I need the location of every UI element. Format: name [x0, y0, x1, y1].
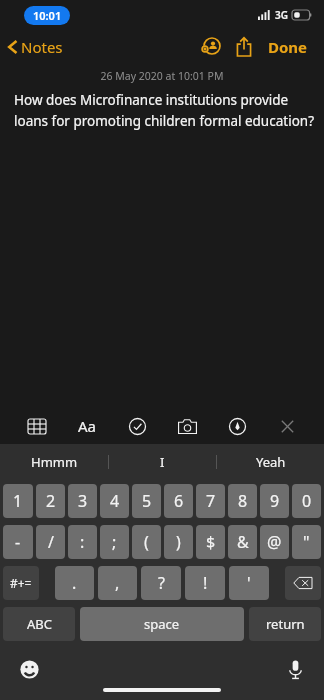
staticText: / — [48, 531, 54, 553]
button[interactable]: Close keyboard — [268, 409, 306, 443]
button[interactable]: Checklist — [118, 409, 156, 443]
staticText: ) — [176, 531, 181, 553]
button[interactable]: 2 — [36, 484, 65, 518]
button[interactable]: 9 — [260, 484, 289, 518]
staticText: , — [115, 572, 120, 594]
staticText: 8 — [238, 490, 248, 512]
button[interactable]: Share — [228, 32, 260, 62]
button[interactable]: ; — [100, 525, 129, 559]
staticText: ( — [144, 531, 149, 553]
staticText: . — [72, 572, 77, 594]
button[interactable]: : — [68, 525, 97, 559]
button[interactable]: return — [249, 607, 321, 641]
staticText: 9 — [270, 490, 280, 512]
staticText: & — [237, 531, 249, 553]
staticText: Notes — [21, 37, 63, 57]
button[interactable]: . — [55, 566, 94, 600]
button[interactable]: 4 — [100, 484, 129, 518]
button[interactable]: , — [98, 566, 137, 600]
button[interactable]: Yeah — [217, 444, 324, 480]
staticText: 6 — [174, 490, 184, 512]
button[interactable]: Text format — [68, 409, 106, 443]
staticText: ; — [112, 531, 117, 553]
staticText: ' — [247, 572, 251, 594]
staticText: 10:01 — [33, 8, 62, 23]
staticText: Aa — [78, 416, 97, 436]
staticText: 1 — [13, 490, 23, 512]
staticText: 4 — [110, 490, 120, 512]
button[interactable]: Notes — [0, 33, 71, 61]
staticText: Hmmm — [31, 453, 78, 471]
button[interactable]: ) — [164, 525, 193, 559]
button[interactable]: Table — [18, 409, 56, 443]
button[interactable]: ! — [185, 566, 225, 600]
button[interactable]: - — [3, 525, 33, 559]
button[interactable]: / — [36, 525, 65, 559]
button[interactable]: ABC — [3, 607, 75, 641]
button[interactable]: & — [228, 525, 257, 559]
button[interactable]: 0 — [292, 484, 321, 518]
button[interactable]: Camera — [168, 409, 206, 443]
button[interactable]: space — [80, 607, 244, 641]
staticText: 7 — [206, 490, 216, 512]
button[interactable]: Markup — [218, 409, 256, 443]
button[interactable]: 8 — [228, 484, 257, 518]
staticText: I — [160, 453, 165, 471]
staticText: Done — [268, 37, 308, 57]
staticText: ! — [203, 572, 208, 594]
staticText: ABC — [27, 615, 52, 633]
staticText: 3 — [78, 490, 88, 512]
staticText: Yeah — [256, 453, 286, 471]
staticText: 0 — [302, 490, 312, 512]
staticText: return — [266, 615, 305, 633]
button[interactable]: ( — [132, 525, 161, 559]
button[interactable]: 6 — [164, 484, 193, 518]
staticText: $ — [206, 531, 216, 553]
staticText: : — [80, 531, 85, 553]
staticText: @ — [267, 531, 282, 553]
staticText: 26 May 2020 at 10:01 PM — [0, 69, 324, 83]
staticText: ? — [158, 572, 165, 594]
staticText: " — [303, 531, 310, 553]
staticText: #+= — [10, 575, 32, 591]
staticText: space — [144, 615, 180, 633]
button[interactable]: 1 — [3, 484, 33, 518]
button[interactable]: I — [109, 444, 216, 480]
button[interactable]: 7 — [196, 484, 225, 518]
staticText: - — [15, 531, 21, 553]
button[interactable]: ' — [229, 566, 269, 600]
button[interactable]: 3 — [68, 484, 97, 518]
button[interactable]: Dictation — [280, 654, 310, 684]
button[interactable]: Hmmm — [0, 444, 108, 480]
staticText: 2 — [46, 490, 56, 512]
button[interactable]: @ — [260, 525, 289, 559]
staticText: How does Microfinance institutions provi… — [14, 91, 314, 130]
button[interactable]: " — [292, 525, 321, 559]
button[interactable]: #+= — [3, 566, 39, 600]
button[interactable]: Backspace — [285, 566, 321, 600]
staticText: 3G — [275, 8, 288, 22]
button[interactable]: $ — [196, 525, 225, 559]
staticText: 5 — [142, 490, 152, 512]
button[interactable]: Emoji — [14, 654, 44, 684]
button[interactable]: Add People — [194, 32, 228, 62]
button[interactable]: Done — [260, 33, 316, 61]
button[interactable]: 5 — [132, 484, 161, 518]
button[interactable]: ? — [141, 566, 181, 600]
